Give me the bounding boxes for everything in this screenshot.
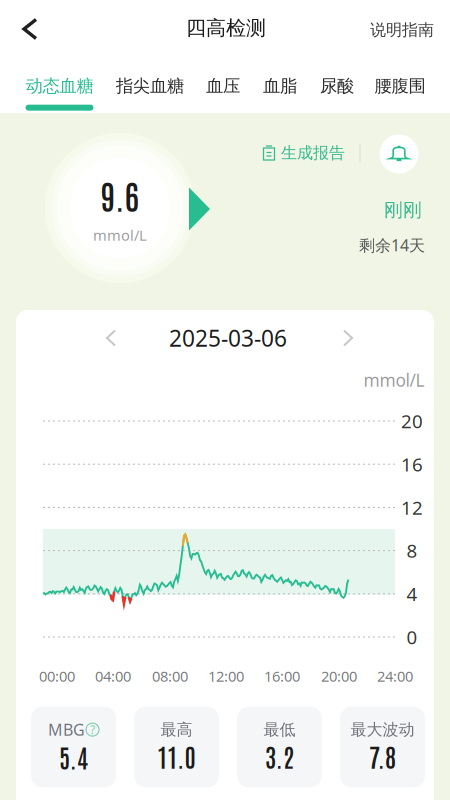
staticText: 20:00: [321, 666, 357, 686]
staticText: 动态血糖: [25, 75, 93, 97]
button[interactable]: 最高: [134, 706, 219, 787]
button[interactable]: 尿酸: [295, 69, 379, 111]
staticText: 5.4: [59, 740, 88, 773]
staticText: MBG: [48, 719, 85, 740]
button[interactable]: 最大波动: [340, 706, 425, 787]
staticText: 剩余14天: [359, 234, 425, 256]
button[interactable]: 血压: [181, 69, 265, 111]
staticText: ?: [90, 722, 95, 737]
staticText: 24:00: [377, 666, 413, 686]
button[interactable]: Next day: [331, 317, 365, 358]
staticText: 12: [401, 495, 423, 520]
staticText: 四高检测: [186, 16, 266, 40]
staticText: 3.2: [265, 739, 294, 772]
button[interactable]: MBG: [31, 706, 116, 787]
staticText: 生成报告: [281, 143, 345, 163]
staticText: 尿酸: [320, 75, 354, 97]
staticText: 指尖血糖: [116, 75, 184, 97]
staticText: 9.6: [100, 173, 139, 216]
staticText: 说明指南: [370, 20, 434, 40]
button[interactable]: 指尖血糖: [108, 69, 192, 111]
staticText: 刚刚: [384, 198, 422, 221]
staticText: 血脂: [263, 75, 297, 97]
button[interactable]: Alerts: [379, 134, 418, 173]
staticText: 7.8: [369, 739, 396, 772]
button[interactable]: Back: [7, 5, 53, 52]
staticText: 8: [406, 538, 417, 563]
staticText: 16: [401, 452, 423, 477]
button[interactable]: 血脂: [238, 69, 322, 111]
staticText: 11.0: [157, 739, 195, 772]
button[interactable]: 生成报告: [257, 135, 351, 171]
staticText: mmol/L: [93, 225, 147, 245]
staticText: 血压: [206, 75, 240, 97]
staticText: 20: [401, 409, 423, 433]
button[interactable]: 最低: [237, 706, 322, 787]
button[interactable]: 说明指南: [362, 8, 442, 52]
staticText: mmol/L: [363, 368, 424, 391]
staticText: 0: [406, 625, 417, 649]
staticText: 12:00: [208, 666, 244, 686]
staticText: 最高: [160, 720, 192, 739]
button[interactable]: 腰腹围: [358, 69, 442, 111]
staticText: 16:00: [264, 666, 300, 686]
staticText: 4: [406, 581, 417, 606]
button[interactable]: 动态血糖: [17, 69, 101, 111]
staticText: 最低: [263, 720, 295, 739]
staticText: 2025-03-06: [169, 323, 287, 353]
staticText: 04:00: [95, 666, 131, 686]
button[interactable]: Previous day: [94, 317, 128, 358]
staticText: 最大波动: [350, 720, 414, 739]
staticText: 08:00: [152, 666, 188, 686]
staticText: 腰腹围: [374, 75, 425, 97]
staticText: 00:00: [39, 666, 75, 686]
